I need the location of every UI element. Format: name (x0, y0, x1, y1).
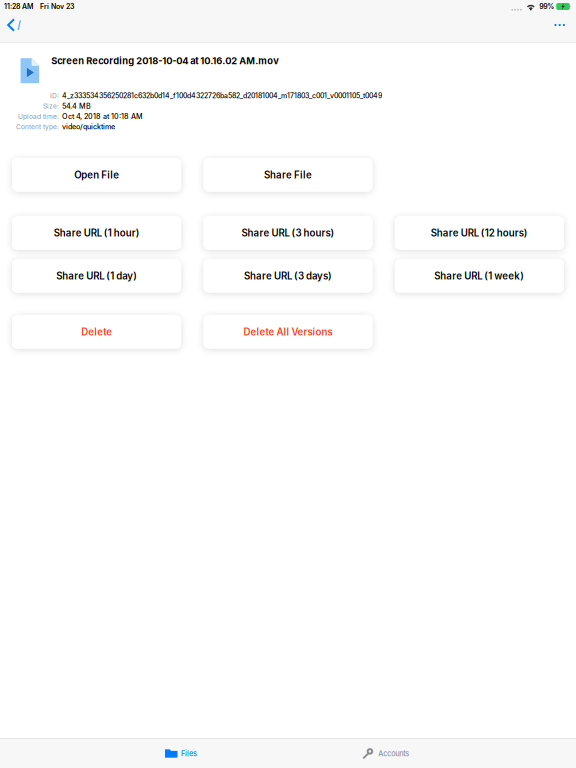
staticText: Share URL (1 day) (56, 270, 137, 282)
button[interactable]: Share URL (12 hours) (395, 216, 564, 250)
staticText: Content type: (16, 123, 59, 131)
button[interactable]: Share URL (1 hour) (12, 216, 181, 250)
staticText: Upload time: (18, 112, 59, 120)
staticText: Screen Recording 2018-10-04 at 10.16.02 … (51, 55, 279, 66)
staticText: Share URL (3 hours) (241, 227, 334, 239)
staticText: Files (181, 749, 197, 758)
staticText: 99% (539, 2, 554, 11)
button[interactable]: Open File (12, 158, 181, 192)
button[interactable]: Share URL (1 week) (395, 259, 564, 293)
staticText: 11:28 AM (4, 2, 33, 11)
staticText: ID: (50, 92, 59, 100)
button[interactable]: Share URL (1 day) (12, 259, 181, 293)
staticText: Open File (74, 169, 119, 181)
button[interactable]: Delete (12, 315, 181, 349)
button[interactable]: Share URL (3 days) (203, 259, 373, 293)
staticText: Share URL (12 hours) (431, 227, 528, 239)
staticText: Share URL (3 days) (244, 270, 332, 282)
staticText: Share File (264, 169, 312, 181)
button[interactable]: Share URL (3 hours) (203, 216, 373, 250)
button[interactable]: Share File (203, 158, 373, 192)
button[interactable] (0, 13, 28, 37)
staticText: Share URL (1 hour) (54, 227, 140, 239)
staticText: Size: (43, 102, 59, 110)
staticText: Oct 4, 2018 at 10:18 AM (62, 112, 143, 121)
staticText: Accounts (378, 749, 409, 758)
staticText: 54.4 MB (62, 102, 91, 110)
staticText: Fri Nov 23 (40, 2, 74, 11)
staticText: Delete All Versions (243, 326, 332, 338)
staticText: 4_z333534356250281c632b0d14_f100d4322726… (62, 92, 382, 100)
staticText: video/quicktime (62, 122, 115, 131)
staticText: Delete (81, 326, 112, 338)
staticText: Share URL (1 week) (434, 270, 524, 282)
button[interactable]: Delete All Versions (203, 315, 373, 349)
button[interactable]: Files (109, 739, 253, 767)
button[interactable]: More options (543, 13, 576, 37)
button[interactable]: Accounts (253, 739, 518, 767)
